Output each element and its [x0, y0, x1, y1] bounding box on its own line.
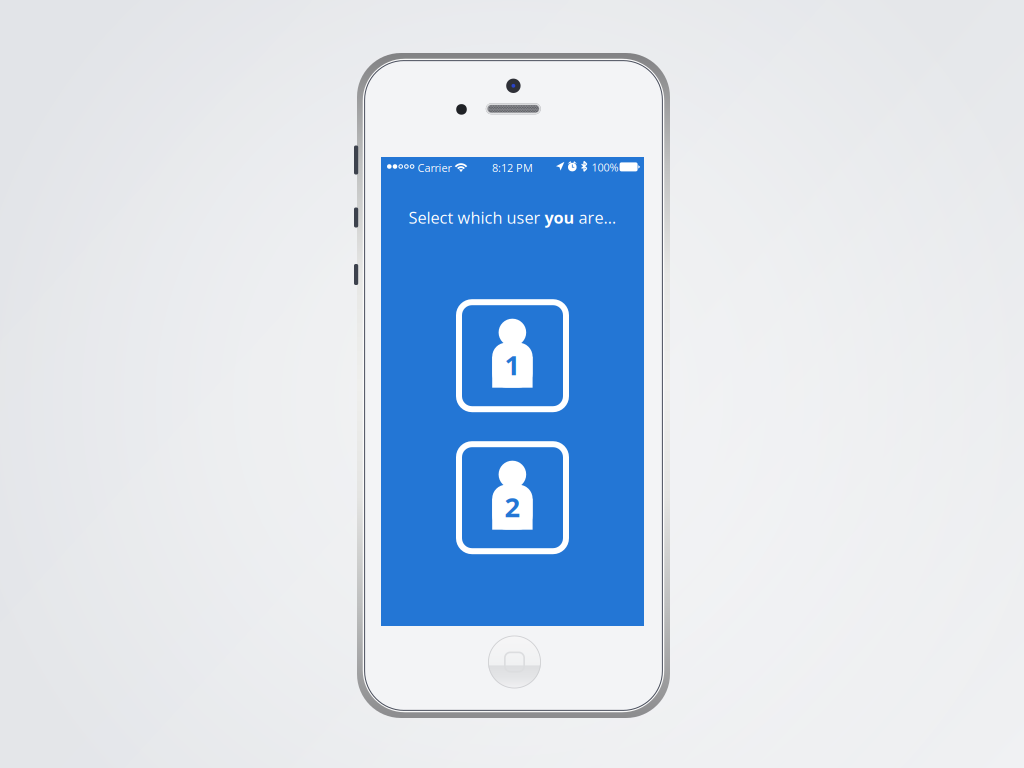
button[interactable]: User 2 — [456, 441, 569, 554]
staticText: Carrier — [418, 160, 452, 175]
staticText: Select which user you are… — [408, 206, 616, 228]
staticText: 8:12 PM — [492, 160, 533, 175]
staticText: 1 — [505, 346, 521, 383]
button[interactable]: Home — [488, 635, 541, 688]
staticText: 100% — [592, 160, 619, 175]
staticText: 2 — [505, 488, 521, 525]
button[interactable]: User 1 — [456, 299, 569, 412]
